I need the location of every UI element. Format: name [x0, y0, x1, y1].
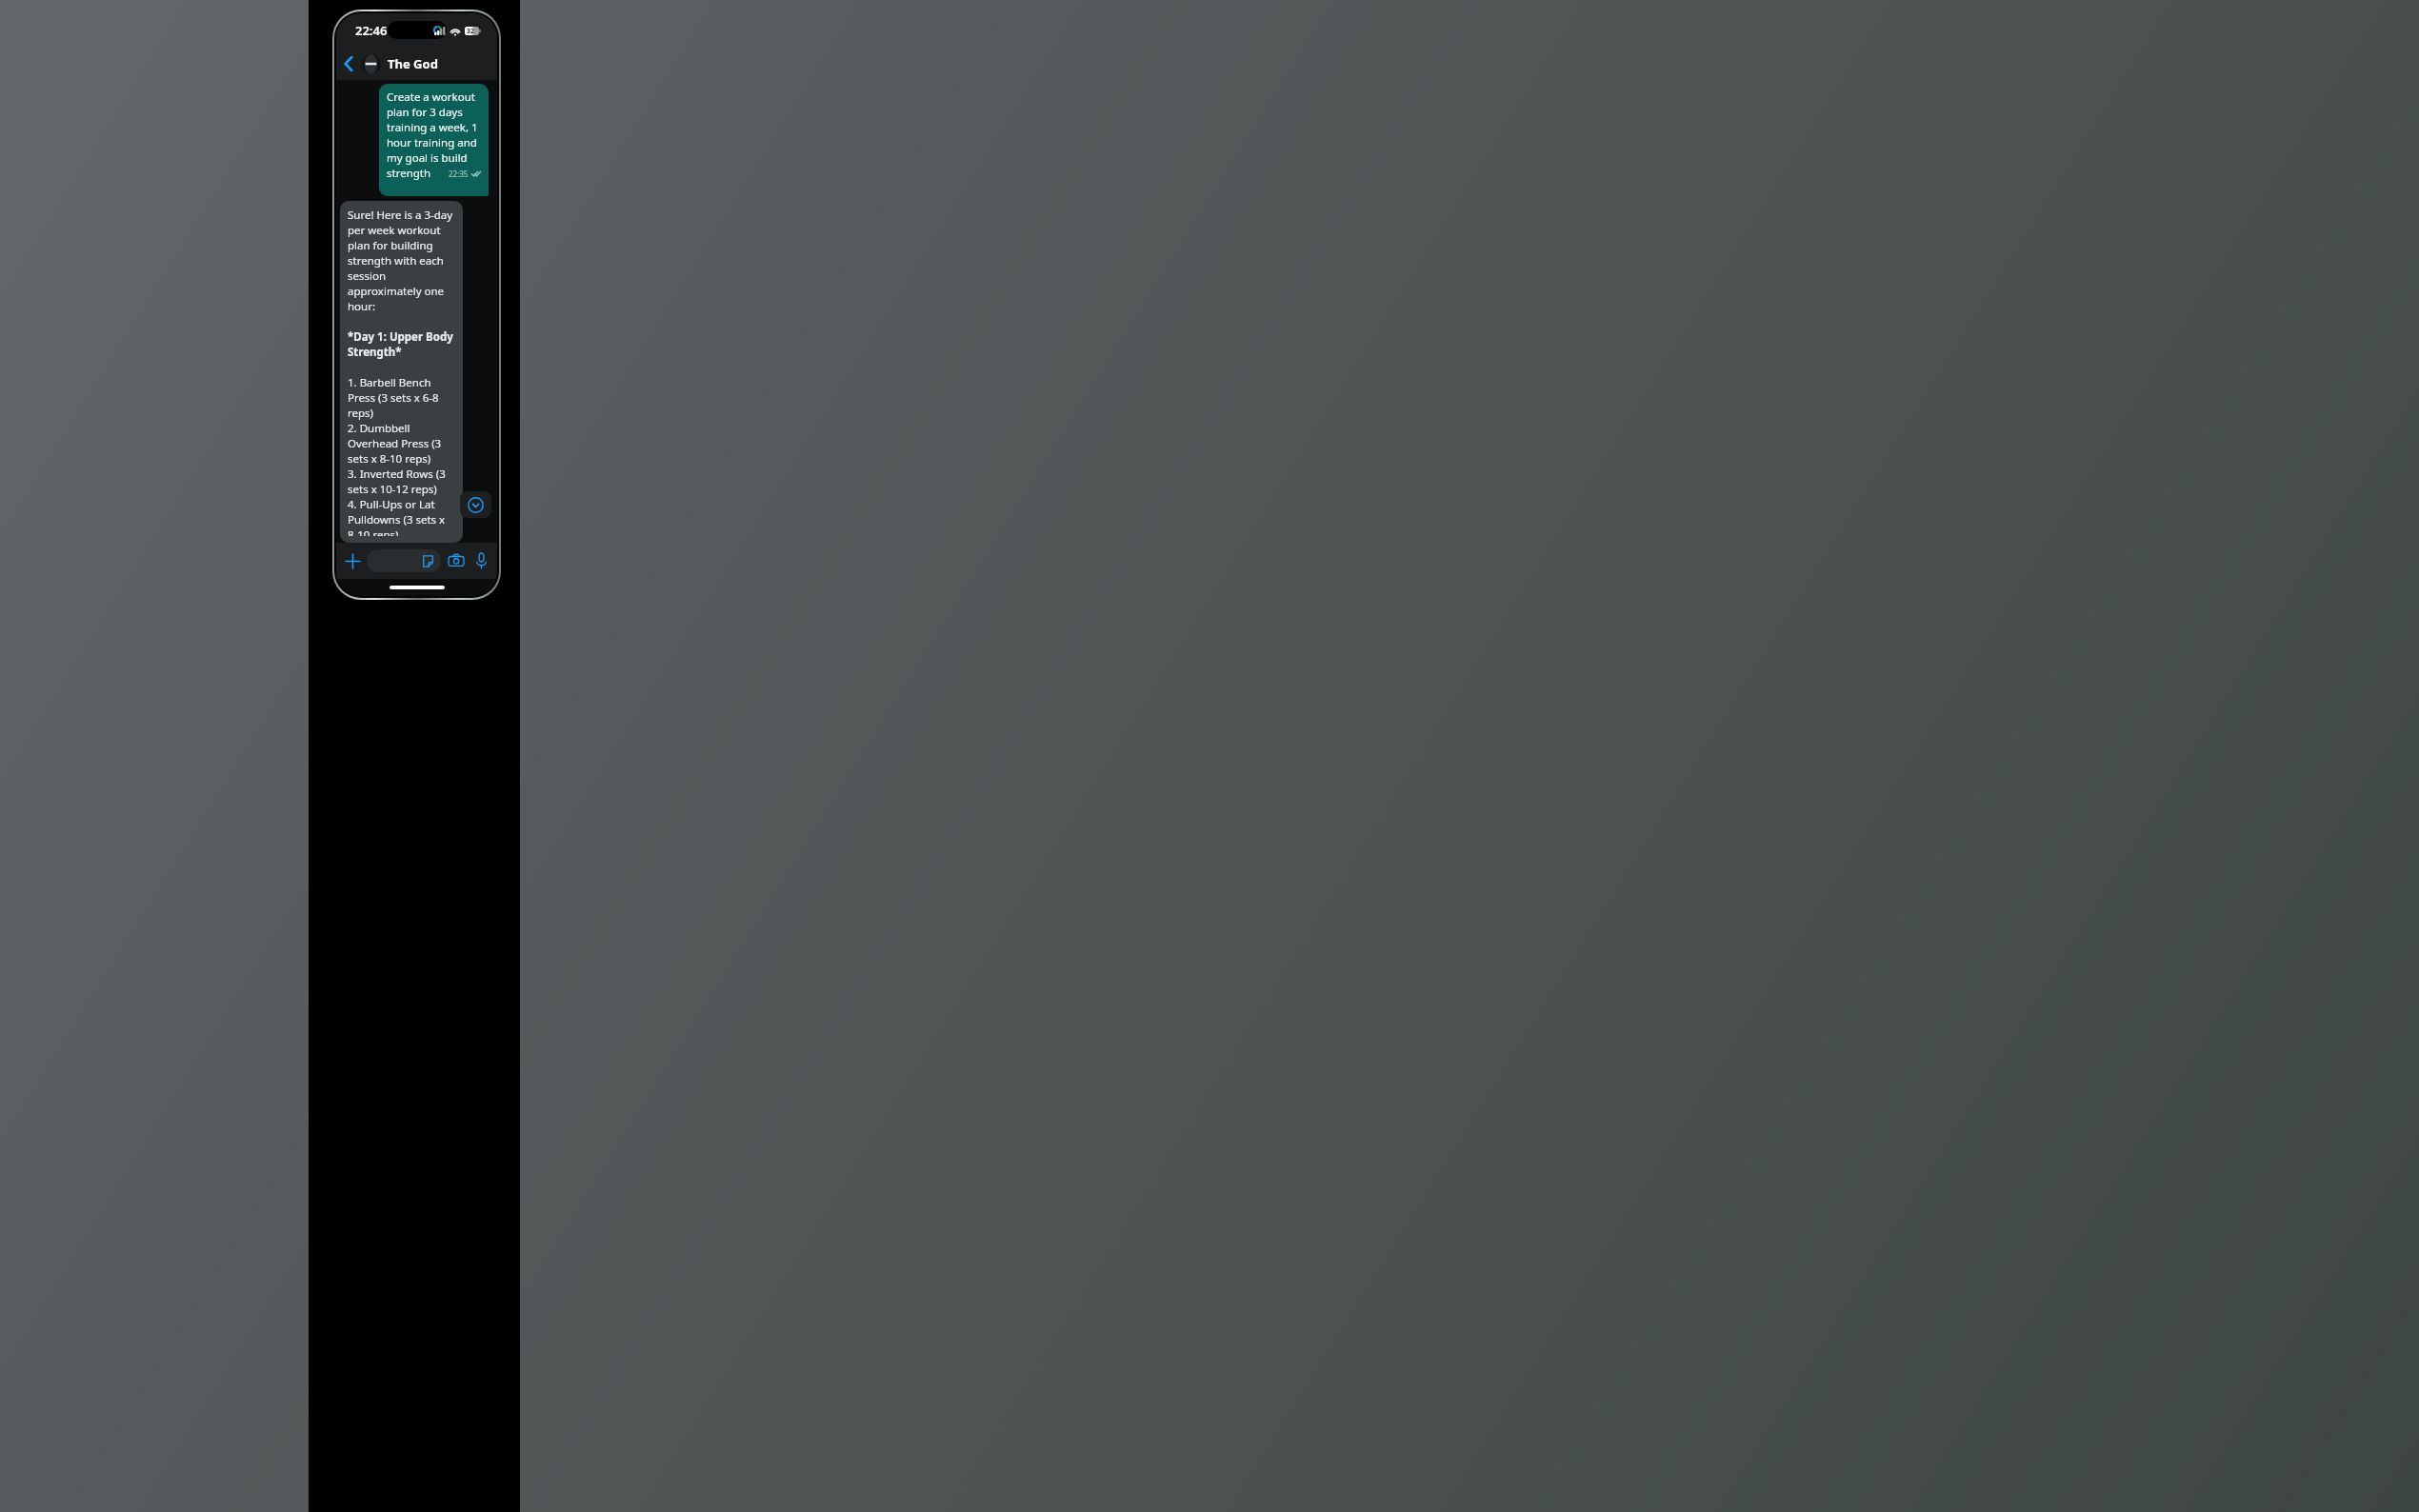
button[interactable]: Sure! Here is a 3-day per week workout p… — [340, 201, 463, 543]
button[interactable]: Stickers — [367, 549, 441, 572]
staticText: 22:35 — [449, 169, 469, 179]
staticText: 22:46 — [355, 22, 388, 39]
button[interactable]: Attach — [343, 551, 362, 570]
button[interactable]: Create a workout plan for 3 days trainin… — [379, 84, 489, 196]
button[interactable]: Scroll to bottom — [460, 491, 491, 518]
staticText: Create a workout plan for 3 days trainin… — [387, 90, 481, 181]
staticText: The God — [388, 55, 438, 72]
button[interactable]: Back — [336, 51, 361, 76]
staticText: Sure! Here is a 3-day per week workout p… — [348, 208, 455, 536]
button[interactable]: Camera — [447, 551, 466, 570]
button[interactable]: The God — [361, 48, 497, 80]
other: Stickers — [421, 554, 435, 568]
staticText: 32 — [467, 27, 475, 35]
button[interactable]: Voice message — [471, 551, 490, 570]
